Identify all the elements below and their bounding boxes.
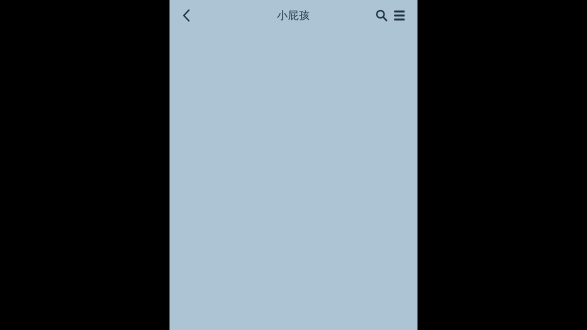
button[interactable]: Search bbox=[376, 0, 394, 31]
button[interactable]: Menu bbox=[394, 0, 405, 31]
button[interactable]: Back bbox=[183, 0, 203, 31]
staticText: 小屁孩 bbox=[277, 9, 310, 22]
